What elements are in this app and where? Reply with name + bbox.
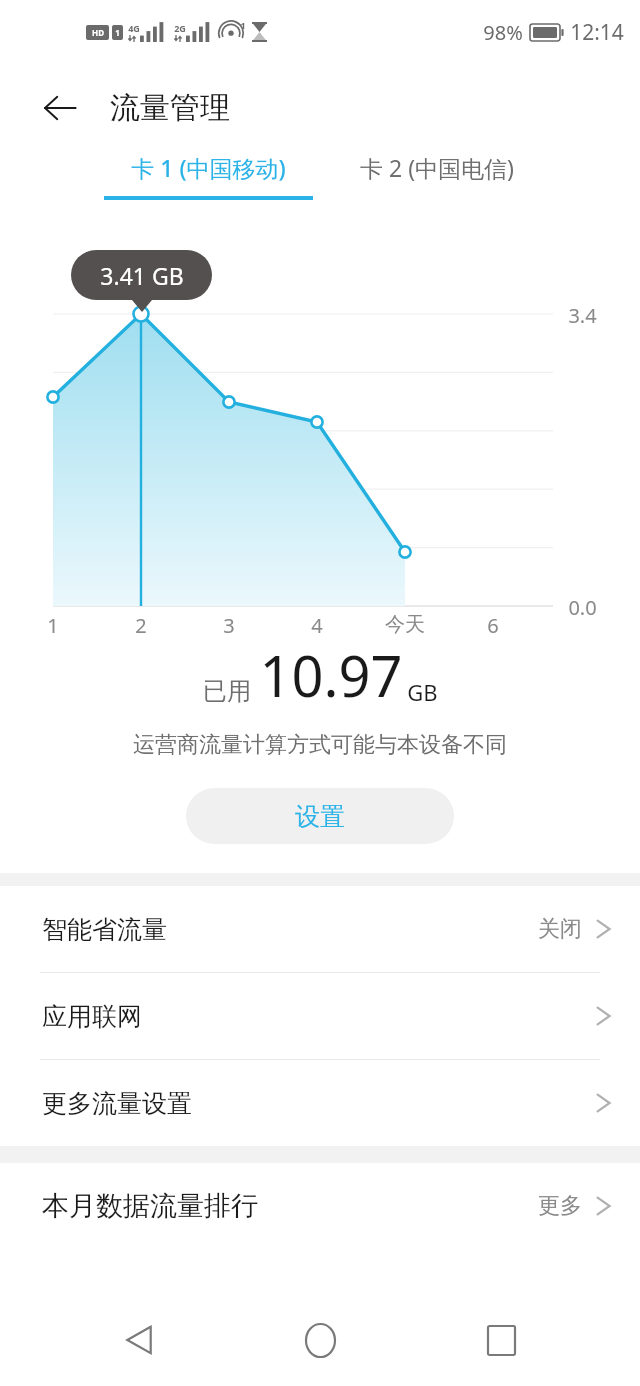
staticText: 3.4 bbox=[568, 302, 597, 329]
staticText: 流量管理 bbox=[110, 89, 230, 127]
staticText: 2 bbox=[135, 612, 147, 639]
button[interactable]: 卡 2 (中国电信) bbox=[337, 152, 537, 214]
staticText: 1 bbox=[47, 612, 59, 639]
staticText: 2G bbox=[174, 22, 186, 34]
staticText: HD bbox=[92, 27, 104, 38]
button[interactable]: 应用联网 bbox=[0, 973, 640, 1059]
button[interactable]: 本月数据流量排行 bbox=[0, 1163, 640, 1249]
staticText: 更多流量设置 bbox=[42, 1088, 192, 1119]
staticText: 4 bbox=[311, 612, 323, 639]
staticText: 1 bbox=[240, 19, 246, 31]
staticText: 3 bbox=[223, 612, 235, 639]
button[interactable]: Home bbox=[278, 1298, 362, 1382]
staticText: 12:14 bbox=[570, 18, 624, 47]
staticText: 0.0 bbox=[568, 594, 597, 621]
staticText: GB bbox=[407, 677, 438, 707]
button[interactable]: 设置 bbox=[186, 788, 454, 844]
staticText: 运营商流量计算方式可能与本设备不同 bbox=[133, 731, 507, 759]
staticText: 卡 1 (中国移动) bbox=[131, 152, 286, 183]
staticText: 关闭 bbox=[538, 915, 582, 943]
button[interactable]: 智能省流量 bbox=[0, 886, 640, 972]
staticText: 应用联网 bbox=[42, 1001, 142, 1032]
button[interactable]: 更多流量设置 bbox=[0, 1060, 640, 1146]
staticText: 本月数据流量排行 bbox=[42, 1189, 258, 1223]
staticText: 1 bbox=[115, 27, 120, 38]
staticText: 6 bbox=[487, 612, 499, 639]
staticText: 98% bbox=[483, 19, 523, 46]
staticText: 4G bbox=[128, 22, 140, 34]
staticText: 今天 bbox=[385, 612, 425, 637]
staticText: 10.97 bbox=[259, 637, 403, 713]
button[interactable]: Recent apps bbox=[459, 1298, 543, 1382]
button[interactable]: Back bbox=[28, 76, 92, 140]
staticText: 卡 2 (中国电信) bbox=[360, 152, 514, 183]
staticText: 已用 bbox=[203, 676, 251, 706]
button[interactable]: Back bbox=[97, 1298, 181, 1382]
button[interactable]: 卡 1 (中国移动) bbox=[104, 152, 313, 214]
staticText: 3.41 GB bbox=[100, 260, 184, 291]
staticText: 设置 bbox=[295, 801, 345, 832]
staticText: 更多 bbox=[538, 1192, 582, 1220]
staticText: 智能省流量 bbox=[42, 914, 167, 945]
